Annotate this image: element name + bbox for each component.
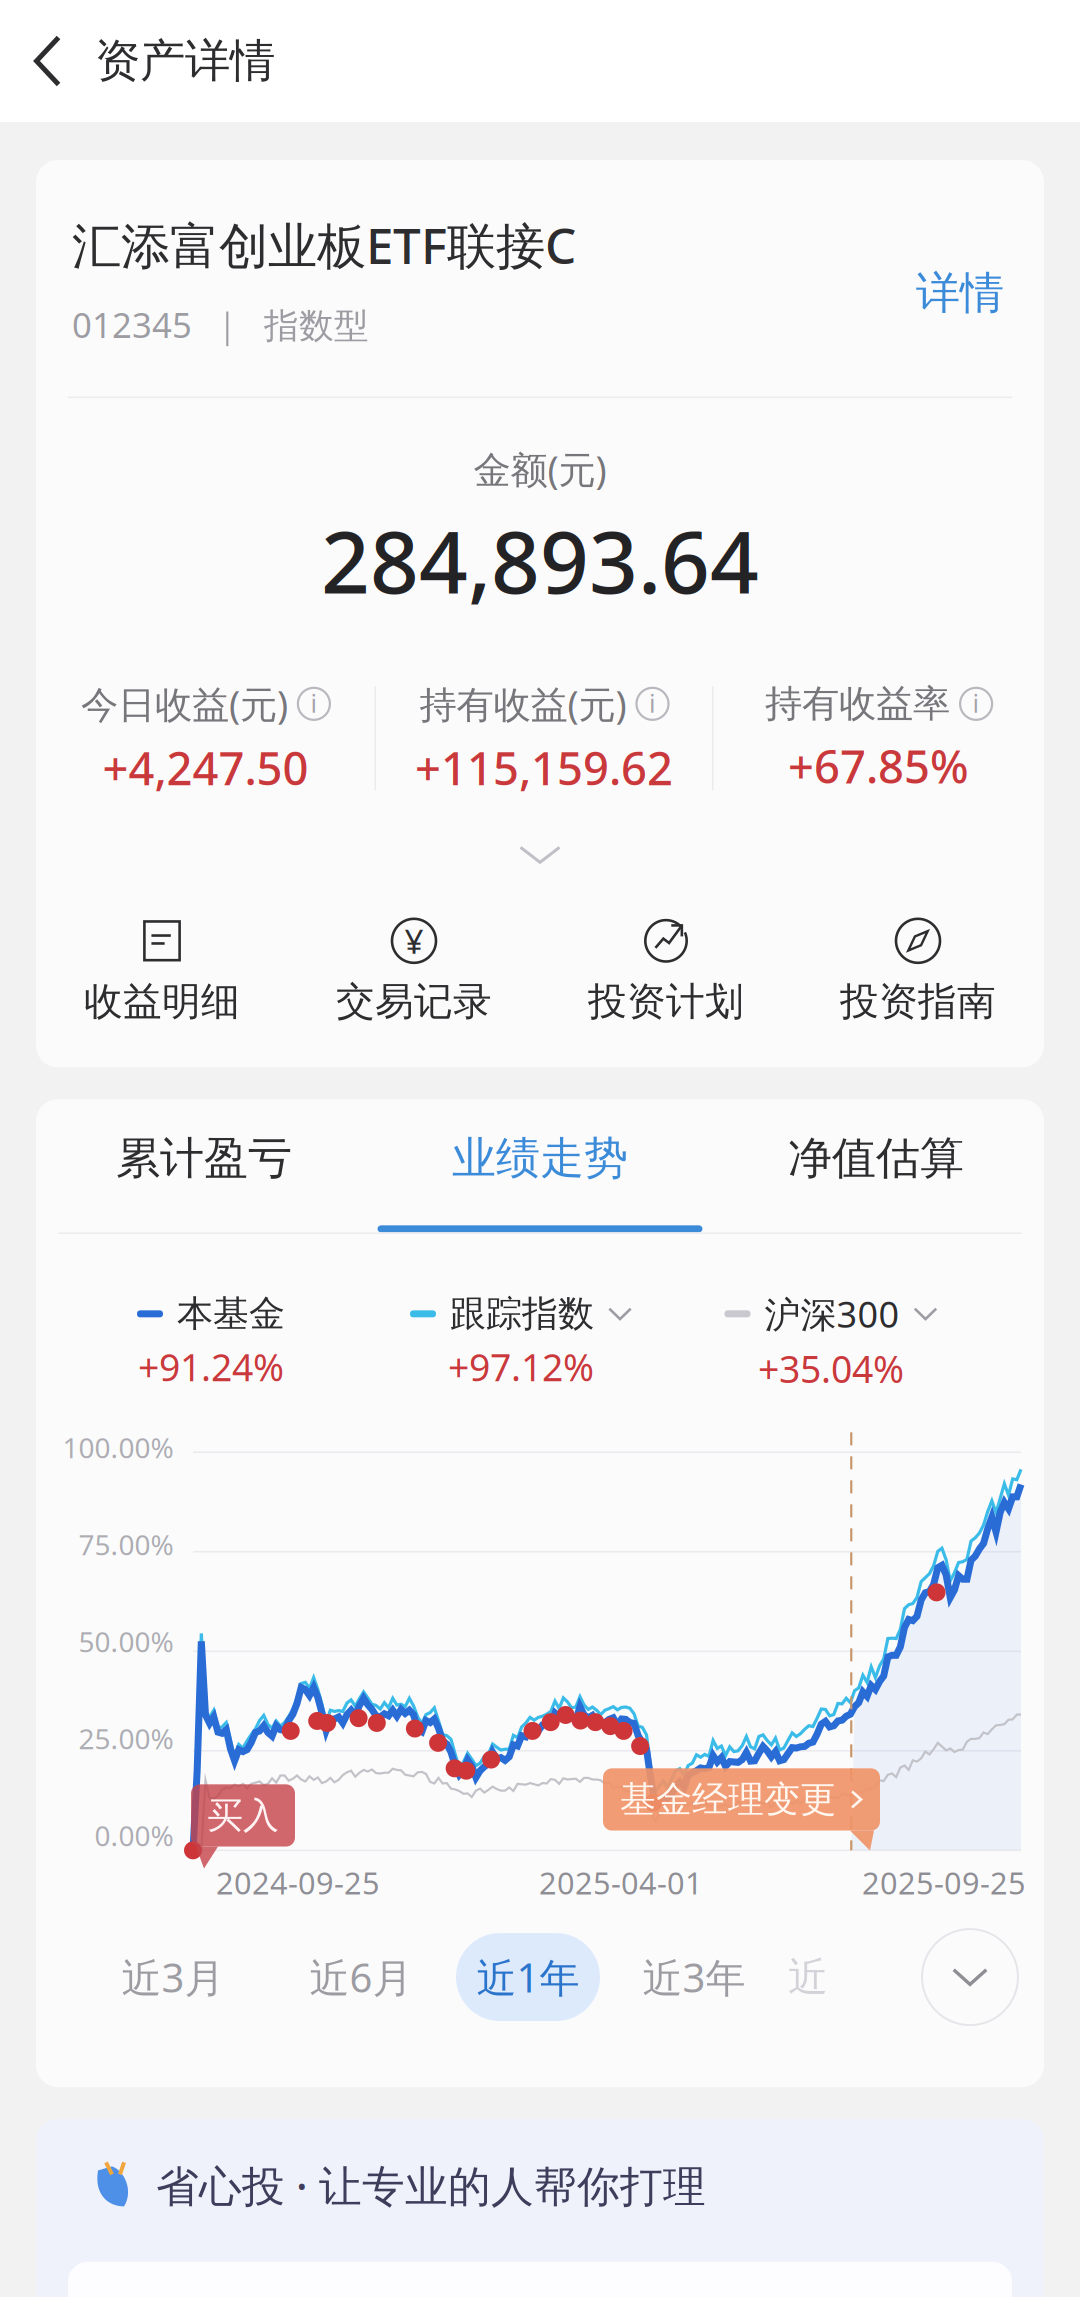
staticText: 今日收益(元): [81, 679, 288, 729]
staticText: 基金经理变更: [620, 1777, 836, 1821]
staticText: 累计盈亏: [116, 1131, 292, 1185]
staticText: 50.00%: [78, 1623, 173, 1660]
staticText: 买入: [207, 1793, 279, 1837]
staticText: 汇添富创业板ETF联接C: [72, 212, 576, 277]
staticText: 25.00%: [78, 1720, 173, 1757]
button[interactable]: 业绩走势: [372, 1099, 708, 1232]
staticText: 75.00%: [78, 1526, 173, 1563]
staticText: +115,159.62: [415, 738, 673, 798]
staticText: +97.12%: [448, 1342, 594, 1392]
button[interactable]: 近3年: [600, 1933, 788, 2021]
button[interactable]: 投资指南: [792, 918, 1044, 1025]
staticText: i: [649, 686, 656, 720]
staticText: 投资计划: [588, 978, 744, 1025]
staticText: 284,893.64: [321, 504, 759, 617]
button[interactable]: ¥: [288, 918, 540, 1025]
button[interactable]: 近: [788, 1933, 876, 2021]
staticText: i: [310, 686, 317, 720]
staticText: ¥: [404, 919, 423, 963]
staticText: +91.24%: [138, 1342, 284, 1392]
staticText: 100.00%: [62, 1429, 173, 1466]
staticText: +35.04%: [758, 1344, 904, 1393]
staticText: 金额(元): [473, 444, 606, 494]
staticText: 省心投 · 让专业的人帮你打理: [156, 2157, 706, 2214]
staticText: 本基金: [177, 1292, 285, 1336]
staticText: 2024-09-25: [216, 1862, 380, 1903]
button[interactable]: 近6月: [266, 1933, 456, 2021]
staticText: 持有收益率: [765, 681, 950, 727]
staticText: 近: [788, 1952, 828, 2002]
button[interactable]: 详情: [910, 212, 1010, 342]
staticText: 近1年: [476, 1950, 579, 2004]
button[interactable]: 投资计划: [540, 918, 792, 1025]
staticText: 资产详情: [95, 33, 275, 89]
staticText: 2025-04-01: [539, 1862, 703, 1903]
staticText: 净值估算: [788, 1131, 964, 1185]
staticText: 近6月: [309, 1950, 412, 2004]
staticText: 近3月: [121, 1950, 224, 2004]
button[interactable]: 净值估算: [708, 1099, 1044, 1232]
staticText: +4,247.50: [102, 738, 308, 798]
button[interactable]: 更多区间: [922, 1929, 1018, 2025]
staticText: +67.85%: [788, 736, 969, 796]
staticText: 近3年: [642, 1950, 745, 2004]
button[interactable]: 近1年: [456, 1933, 600, 2021]
staticText: 收益明细: [84, 978, 240, 1025]
button[interactable]: 收益明细: [36, 918, 288, 1025]
staticText: 交易记录: [336, 978, 492, 1025]
staticText: i: [973, 686, 980, 720]
staticText: 详情: [916, 266, 1004, 320]
staticText: 持有收益(元): [419, 679, 626, 729]
staticText: 业绩走势: [452, 1131, 628, 1185]
button[interactable]: 近3月: [80, 1933, 266, 2021]
staticText: 2025-09-25: [862, 1862, 1026, 1903]
staticText: 0.00%: [94, 1817, 173, 1854]
button[interactable]: 累计盈亏: [36, 1099, 372, 1232]
staticText: 投资指南: [840, 978, 996, 1025]
staticText: 沪深300: [764, 1290, 899, 1338]
staticText: 012345 ｜ 指数型: [72, 301, 369, 347]
staticText: 跟踪指数: [450, 1292, 594, 1336]
button[interactable]: 返回: [0, 0, 95, 122]
